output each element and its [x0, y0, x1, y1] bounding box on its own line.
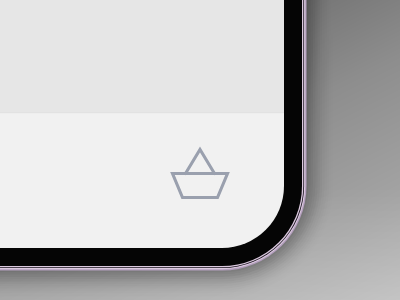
button[interactable]: Shopping basket	[172, 148, 228, 204]
